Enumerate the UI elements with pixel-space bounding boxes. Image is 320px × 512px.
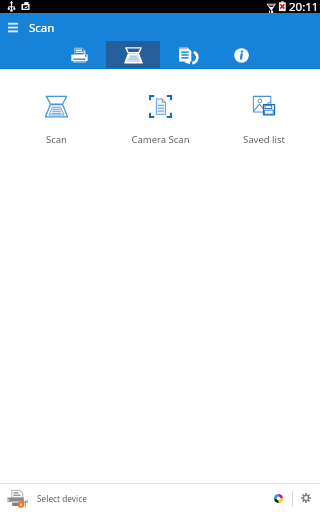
staticText: Camera Scan [131,133,190,146]
staticText: Select device [37,493,87,504]
button[interactable]: Scan [106,41,160,69]
button[interactable]: Color mode [264,484,292,512]
button[interactable]: Scan [9,95,104,146]
button[interactable]: Document conversion [160,41,214,69]
button[interactable]: Print [52,41,106,69]
button[interactable]: Camera Scan [113,95,208,146]
staticText: Scan [46,133,67,146]
button[interactable]: Open navigation drawer [0,13,25,41]
button[interactable]: Saved list [216,95,311,146]
button[interactable]: Select device [0,484,264,512]
staticText: 20:11 [289,0,319,12]
staticText: Scan [29,20,55,36]
button[interactable]: Settings [293,484,319,512]
staticText: Saved list [243,133,285,146]
button[interactable]: Information [214,41,268,69]
